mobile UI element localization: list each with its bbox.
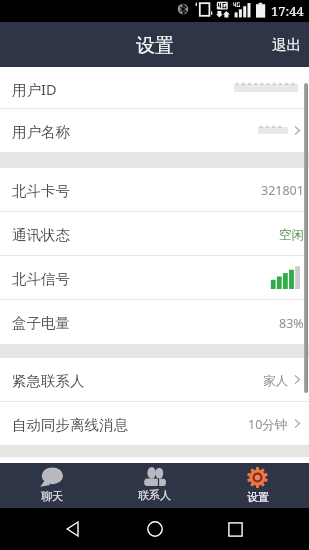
staticText: 紧急联系人 [12, 372, 85, 390]
button[interactable]: 用户ID [0, 67, 309, 108]
staticText: 家人 [263, 373, 288, 389]
button[interactable]: 自动同步离线消息 [0, 402, 309, 445]
button[interactable]: 用户名称 [0, 109, 309, 152]
button[interactable]: Back [66, 521, 81, 537]
other: Contacts [143, 467, 166, 486]
staticText: 北斗卡号 [12, 182, 70, 200]
staticText: 用户ID [12, 79, 57, 99]
staticText: 用户名称 [12, 123, 70, 141]
button[interactable]: Settings [206, 463, 309, 508]
button[interactable]: Chat [0, 463, 103, 508]
staticText: 设置 [247, 490, 269, 504]
button[interactable]: Contacts [103, 463, 206, 508]
staticText: 通讯状态 [12, 226, 70, 244]
other: Settings [247, 467, 268, 488]
staticText: 83% [279, 315, 304, 332]
staticText: 聊天 [41, 489, 63, 503]
staticText: 17:44 [271, 2, 304, 20]
staticText: 北斗信号 [12, 270, 70, 288]
staticText: 盒子电量 [12, 314, 70, 332]
staticText: 自动同步离线消息 [12, 416, 128, 434]
button[interactable]: 紧急联系人 [0, 358, 309, 401]
button[interactable]: 北斗信号 [0, 256, 309, 299]
staticText: 空闲 [279, 227, 304, 243]
button[interactable]: 退出 [0, 22, 309, 67]
button[interactable]: Recents [228, 522, 243, 537]
staticText: 321801 [261, 182, 304, 199]
staticText: 联系人 [138, 488, 171, 502]
button[interactable]: 盒子电量 [0, 300, 309, 344]
button[interactable]: 通讯状态 [0, 212, 309, 255]
button[interactable]: Home [147, 521, 163, 537]
staticText: 设置 [136, 34, 174, 58]
button[interactable]: 北斗卡号 [0, 168, 309, 211]
staticText: 10分钟 [248, 416, 288, 433]
other: Chat [40, 467, 64, 487]
staticText: 退出 [272, 36, 301, 54]
